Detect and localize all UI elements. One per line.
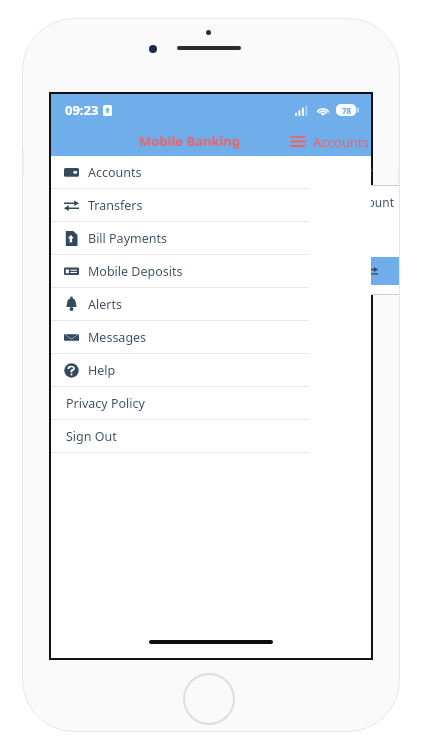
staticText: Accounts <box>313 133 369 151</box>
button[interactable]: Sign Out <box>51 420 309 452</box>
staticText: 78 <box>342 105 352 116</box>
button[interactable]: Help <box>51 354 309 386</box>
button[interactable]: Mobile Deposits <box>51 255 309 287</box>
button[interactable]: Messages <box>51 321 309 353</box>
button[interactable]: Menu <box>285 131 311 152</box>
staticText: Sign Out <box>66 428 117 445</box>
staticText: Bill Payments <box>88 230 167 247</box>
button[interactable]: Accounts <box>311 133 371 151</box>
staticText: Balance <box>327 162 374 179</box>
staticText: Messages <box>88 329 147 346</box>
staticText: Transfers <box>88 197 143 214</box>
button[interactable]: Transfers <box>51 189 309 221</box>
staticText: Help <box>88 362 116 379</box>
staticText: Mobile Banking <box>139 132 240 150</box>
staticText: 09:23 <box>65 101 99 119</box>
staticText: Mobile Deposits <box>88 263 183 280</box>
staticText: Accounts <box>88 164 142 181</box>
staticText: Privacy Policy <box>66 395 145 412</box>
button[interactable]: Bill Payments <box>51 222 309 254</box>
button[interactable]: Alerts <box>51 288 309 320</box>
button[interactable]: Accounts <box>51 156 309 188</box>
button[interactable]: Privacy Policy <box>51 387 309 419</box>
staticText: test account <box>325 194 394 210</box>
button[interactable]: Transfer <box>325 257 400 285</box>
staticText: Alerts <box>88 296 122 313</box>
